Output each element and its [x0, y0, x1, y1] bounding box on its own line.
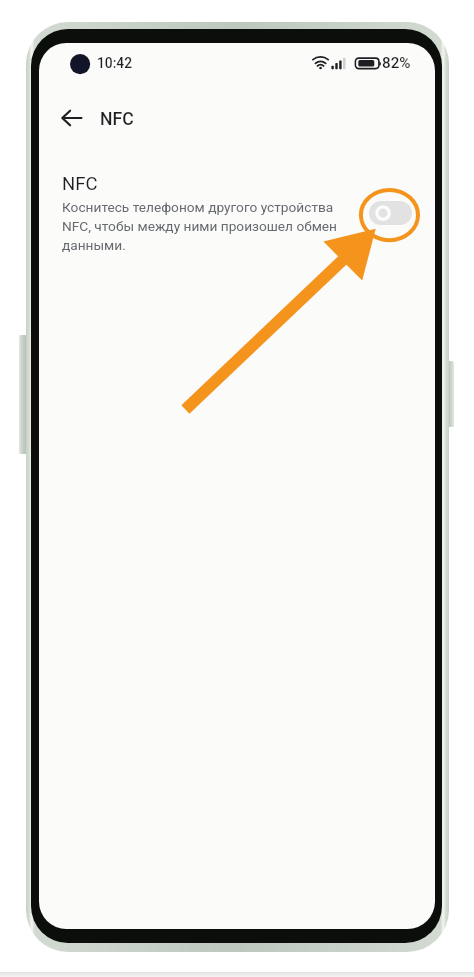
staticText: Коснитесь телефоном другого устройства N…	[62, 199, 338, 254]
staticText: NFC	[62, 173, 98, 195]
button[interactable]: NFC switch	[369, 201, 412, 225]
staticText: 10:42	[97, 55, 133, 71]
staticText: 82%	[382, 54, 411, 72]
button[interactable]: Back	[58, 104, 86, 132]
staticText: NFC	[100, 109, 134, 130]
